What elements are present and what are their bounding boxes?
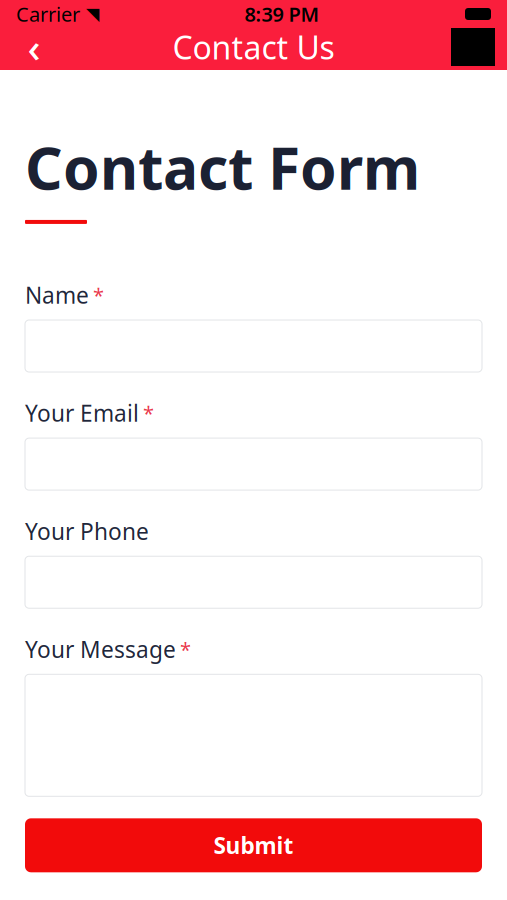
staticText: Contact Form [25, 128, 420, 206]
staticText: Name [25, 280, 89, 310]
staticText: * [143, 400, 154, 426]
staticText: 8:39 PM [244, 1, 319, 27]
button[interactable]: Back [12, 28, 56, 66]
button[interactable]: Submit [25, 818, 482, 872]
staticText: Carrier [16, 1, 80, 27]
staticText: Your Phone [25, 516, 149, 546]
staticText: Your Email [25, 398, 139, 428]
staticText: * [93, 282, 104, 308]
staticText: ◥ [80, 4, 99, 24]
staticText: ‹ [27, 20, 40, 73]
button[interactable]: Your Email [25, 438, 482, 490]
staticText: Submit [213, 830, 293, 860]
staticText: Contact Us [172, 26, 334, 68]
staticText: Your Message [25, 634, 176, 664]
staticText: * [180, 636, 191, 663]
button[interactable]: Your Phone [25, 556, 482, 608]
